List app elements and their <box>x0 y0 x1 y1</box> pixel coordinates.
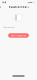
button[interactable]: Confirm payment <box>8 33 29 38</box>
staticText: Confirm payment <box>10 34 26 37</box>
staticText: 9:41 <box>2 1 6 4</box>
staticText: Total amount <box>3 26 15 28</box>
staticText: Transaction Details <box>8 6 28 8</box>
button[interactable]: Back <box>0 5 6 9</box>
